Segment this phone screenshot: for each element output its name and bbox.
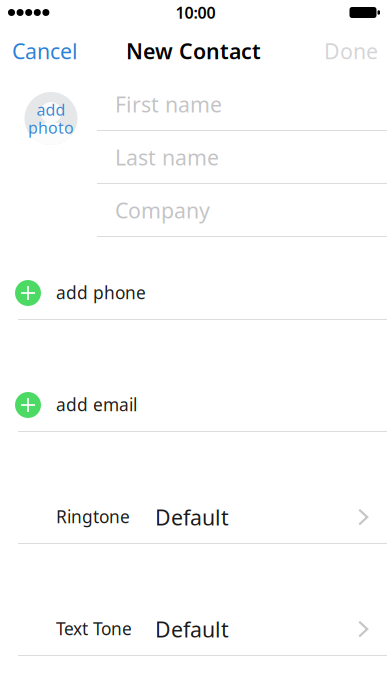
staticText: Default	[155, 615, 229, 643]
staticText: New Contact	[126, 37, 261, 65]
staticText: 10:00	[175, 2, 215, 23]
staticText: Done	[324, 37, 378, 65]
button[interactable]: Done	[312, 25, 387, 63]
staticText: add	[36, 99, 65, 120]
button[interactable]: add email	[0, 379, 387, 432]
button[interactable]: Ringtone	[0, 491, 387, 544]
staticText: add phone	[56, 281, 146, 304]
staticText: Default	[155, 503, 229, 531]
button[interactable]: add phone	[0, 267, 387, 320]
staticText: photo	[28, 117, 74, 138]
staticText: Cancel	[12, 37, 78, 65]
staticText: First name	[115, 90, 222, 118]
button[interactable]: Cancel	[0, 25, 90, 63]
staticText: add email	[56, 393, 137, 416]
staticText: Ringtone	[56, 505, 130, 528]
button[interactable]: Add photo	[21, 92, 81, 145]
staticText: Last name	[115, 143, 219, 171]
staticText: Text Tone	[56, 617, 132, 640]
button[interactable]: Text Tone	[0, 603, 387, 656]
staticText: Company	[115, 196, 210, 224]
